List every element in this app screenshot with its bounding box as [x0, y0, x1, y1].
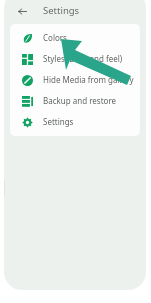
- button[interactable]: Hide Media from gallery: [10, 69, 140, 90]
- button[interactable]: Backup and restore: [10, 90, 140, 111]
- button[interactable]: Styles (Look and feel): [10, 48, 140, 69]
- staticText: Hide Media from gallery: [43, 74, 134, 85]
- button[interactable]: Back: [12, 1, 32, 21]
- staticText: Colors: [43, 32, 67, 43]
- staticText: Settings: [43, 116, 74, 127]
- button[interactable]: Colors: [10, 27, 140, 48]
- staticText: Settings: [43, 4, 80, 17]
- staticText: Backup and restore: [43, 95, 117, 106]
- button[interactable]: Settings: [10, 111, 140, 132]
- staticText: Styles (Look and feel): [43, 53, 123, 64]
